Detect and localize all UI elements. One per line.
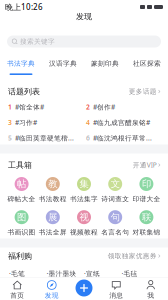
staticText: #创作# bbox=[93, 103, 115, 111]
button[interactable]: 消息 bbox=[99, 280, 133, 300]
staticText: 5 bbox=[8, 134, 12, 142]
button[interactable]: 6 bbox=[86, 133, 160, 143]
staticText: 联 bbox=[142, 211, 151, 223]
button[interactable]: 展 bbox=[37, 210, 68, 236]
staticText: 4 bbox=[86, 118, 90, 127]
staticText: 名言名句 bbox=[101, 228, 129, 236]
staticText: 开通VIP bbox=[133, 161, 157, 169]
staticText: 视频教程 bbox=[70, 228, 98, 236]
staticText: 1 bbox=[8, 103, 12, 111]
button[interactable]: 4 bbox=[86, 117, 160, 127]
staticText: #馆全体# bbox=[15, 103, 44, 111]
button[interactable]: 教 bbox=[37, 177, 68, 203]
staticText: #习作# bbox=[15, 118, 37, 127]
staticText: 书法字典 bbox=[7, 59, 35, 68]
staticText: 书法集字 bbox=[70, 195, 98, 203]
button[interactable]: 印 bbox=[131, 177, 162, 203]
button[interactable]: 更多话题 bbox=[129, 85, 160, 98]
staticText: 帖 bbox=[17, 178, 26, 190]
staticText: ·墨汁墨块 bbox=[46, 269, 76, 278]
button[interactable]: 发现 bbox=[34, 280, 69, 300]
button[interactable]: 集 bbox=[68, 177, 100, 203]
staticText: 6 bbox=[86, 134, 90, 142]
button[interactable]: 5 bbox=[8, 133, 82, 143]
button[interactable]: 搜索关键字 bbox=[7, 35, 161, 47]
staticText: 集 bbox=[79, 178, 88, 190]
button[interactable]: ·墨汁墨块 bbox=[46, 269, 84, 278]
button[interactable]: 开通VIP bbox=[133, 159, 160, 171]
staticText: 教 bbox=[48, 178, 57, 190]
staticText: 工具箱 bbox=[8, 160, 32, 170]
button[interactable]: 文 bbox=[100, 177, 131, 203]
staticText: 搜索关键字 bbox=[20, 37, 55, 46]
staticText: 福利购 bbox=[8, 251, 32, 261]
button[interactable]: 发布 bbox=[75, 279, 92, 296]
button[interactable]: 篆刻印典 bbox=[84, 59, 126, 75]
button[interactable]: 图 bbox=[6, 210, 37, 236]
staticText: 领取独家优惠券 bbox=[108, 252, 157, 260]
staticText: 发现 bbox=[45, 291, 59, 300]
staticText: 句 bbox=[111, 211, 120, 223]
staticText: 书画识图 bbox=[8, 228, 36, 236]
button[interactable]: 1 bbox=[8, 102, 82, 112]
staticText: 晚上10:26 bbox=[5, 2, 43, 12]
staticText: 更多话题 bbox=[129, 87, 157, 96]
staticText: 汉语字典 bbox=[49, 59, 77, 68]
staticText: 首页 bbox=[10, 291, 24, 300]
staticText: 诗词查文 bbox=[101, 195, 129, 203]
staticText: 2 bbox=[86, 103, 90, 111]
staticText: 书法全屏 bbox=[39, 228, 67, 236]
button[interactable]: 3 bbox=[8, 117, 82, 127]
button[interactable]: 我 bbox=[133, 280, 168, 300]
button[interactable]: 书法字典 bbox=[0, 59, 42, 75]
staticText: 对联集锦 bbox=[132, 228, 160, 236]
button[interactable]: ·毛毡 bbox=[121, 269, 159, 278]
staticText: 书法教程 bbox=[39, 195, 67, 203]
staticText: #临九成宫醴泉铭# bbox=[93, 118, 150, 127]
staticText: 印 bbox=[142, 178, 151, 190]
button[interactable]: 句 bbox=[100, 210, 131, 236]
staticText: 我 bbox=[147, 291, 154, 300]
button[interactable]: 视 bbox=[68, 210, 100, 236]
staticText: #临田英章硬笔楷书70… bbox=[15, 134, 79, 142]
staticText: 发现 bbox=[76, 12, 92, 21]
staticText: 图 bbox=[17, 211, 26, 223]
staticText: ·宣纸 bbox=[84, 269, 100, 278]
staticText: 篆刻印典 bbox=[91, 59, 119, 68]
staticText: 印谱大全 bbox=[132, 195, 160, 203]
staticText: 话题列表 bbox=[8, 87, 40, 96]
staticText: 展 bbox=[48, 211, 57, 223]
staticText: 社区探索 bbox=[133, 59, 161, 68]
staticText: ·毛笔 bbox=[9, 269, 25, 278]
staticText: 视 bbox=[79, 211, 88, 223]
button[interactable]: 社区探索 bbox=[126, 59, 168, 75]
staticText: ·毛毡 bbox=[121, 269, 137, 278]
button[interactable]: 联 bbox=[131, 210, 162, 236]
staticText: #临沈鸿根行草常用70… bbox=[93, 134, 157, 142]
staticText: 文 bbox=[111, 178, 120, 190]
button[interactable]: 2 bbox=[86, 102, 160, 112]
button[interactable]: 帖 bbox=[6, 177, 37, 203]
staticText: 消息 bbox=[109, 291, 123, 300]
button[interactable]: ·宣纸 bbox=[84, 269, 121, 278]
button[interactable]: 领取独家优惠券 bbox=[108, 250, 160, 262]
staticText: 碑帖大全 bbox=[8, 195, 36, 203]
button[interactable]: ·毛笔 bbox=[9, 269, 46, 278]
button[interactable]: 首页 bbox=[0, 280, 34, 300]
button[interactable]: 汉语字典 bbox=[42, 59, 84, 75]
staticText: 3 bbox=[8, 118, 12, 127]
